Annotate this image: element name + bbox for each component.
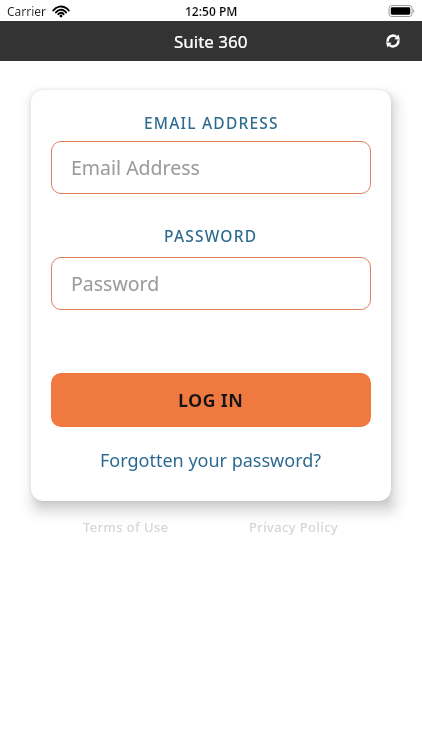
button[interactable]: Terms of Use (83, 518, 169, 536)
button[interactable] (381, 29, 405, 53)
staticText: Email Address (71, 154, 200, 181)
button[interactable]: Password (51, 257, 371, 310)
staticText: Suite 360 (174, 30, 248, 53)
staticText: EMAIL ADDRESS (144, 112, 279, 133)
staticText: Terms of Use (83, 518, 169, 536)
staticText: Forgotten your password? (100, 448, 322, 473)
button[interactable]: Forgotten your password? (100, 448, 322, 473)
button[interactable]: Email Address (51, 141, 371, 194)
staticText: Password (71, 270, 160, 297)
staticText: Carrier (7, 3, 47, 19)
button[interactable]: Privacy Policy (249, 518, 339, 536)
staticText: Privacy Policy (249, 518, 339, 536)
staticText: PASSWORD (164, 225, 258, 246)
staticText: 12:50 PM (185, 3, 238, 19)
staticText: LOG IN (178, 388, 244, 413)
button[interactable]: LOG IN (51, 373, 371, 427)
